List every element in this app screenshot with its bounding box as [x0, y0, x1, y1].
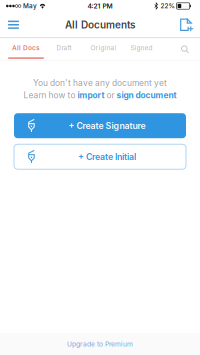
staticText: sign document	[116, 90, 176, 100]
staticText: Draft	[56, 44, 71, 52]
button[interactable]: All Docs	[8, 38, 44, 60]
button[interactable]: Upgrade to Premium	[0, 333, 200, 355]
staticText: + Create Initial	[78, 151, 136, 162]
button[interactable]: New Document	[172, 12, 200, 37]
button[interactable]: Search	[174, 38, 196, 60]
button[interactable]: Signed	[123, 38, 160, 60]
staticText: + Create Signature	[68, 120, 145, 131]
staticText: Signed	[130, 44, 152, 52]
staticText: All Documents	[65, 19, 135, 31]
staticText: 22%	[160, 2, 174, 10]
button[interactable]: + Create Initial	[14, 144, 186, 169]
staticText: You don't have any document yet	[33, 78, 167, 88]
button[interactable]: + Create Signature	[14, 113, 186, 138]
staticText: Upgrade to Premium	[67, 340, 133, 348]
staticText: All Docs	[12, 44, 40, 52]
button[interactable]: sign document	[116, 90, 176, 100]
button[interactable]: import	[77, 90, 104, 100]
button[interactable]: Original	[84, 38, 123, 60]
staticText: May	[23, 2, 37, 10]
staticText: import	[77, 90, 104, 100]
staticText: 4:21 PM	[87, 2, 112, 10]
button[interactable]: Menu	[0, 12, 27, 37]
staticText: or	[104, 90, 116, 100]
button[interactable]: Draft	[44, 38, 84, 60]
staticText: Learn how to	[23, 90, 77, 100]
staticText: Original	[90, 44, 116, 52]
